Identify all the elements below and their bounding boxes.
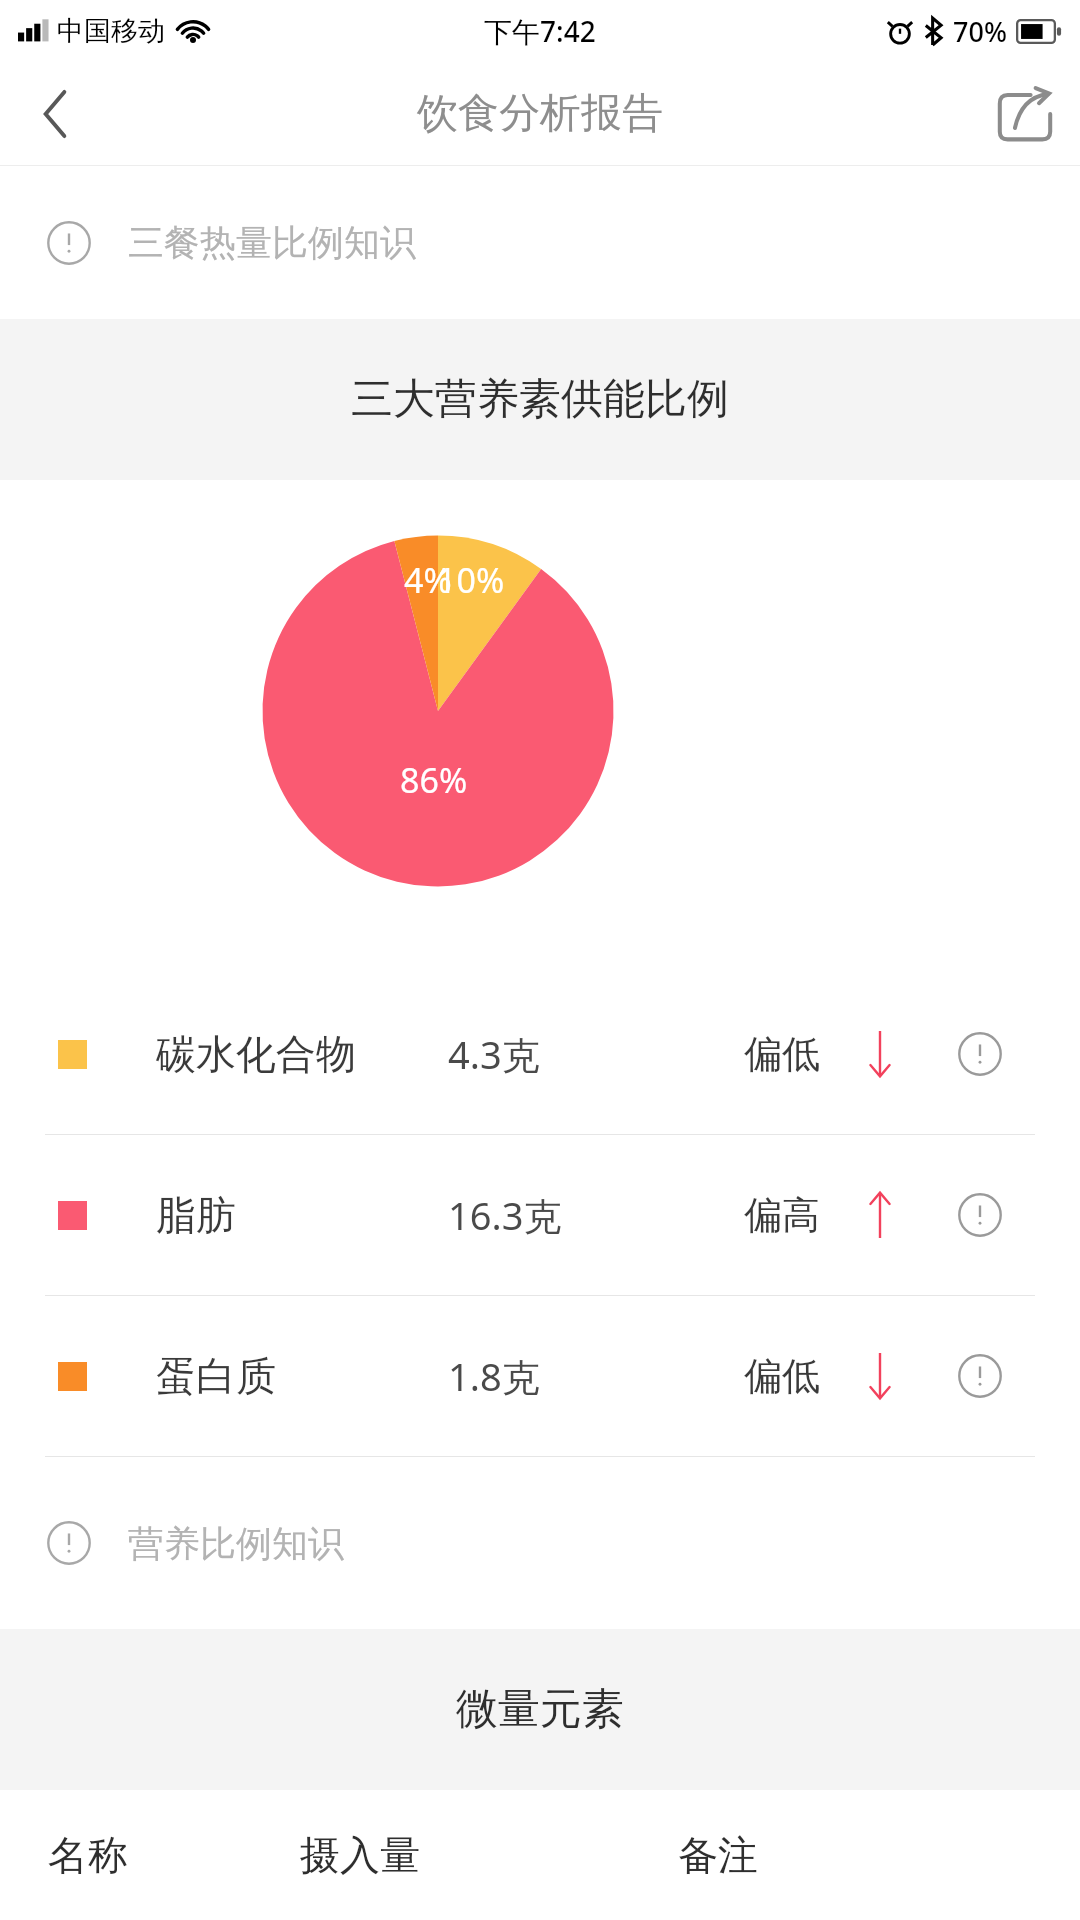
staticText: 4%: [404, 557, 452, 603]
staticText: 碳水化合物: [156, 1029, 356, 1079]
staticText: 备注: [678, 1830, 758, 1880]
other: 偏高: [857, 1192, 903, 1238]
staticText: 16.3克: [448, 1189, 562, 1241]
staticText: 70%: [953, 13, 1007, 50]
staticText: 1.8克: [448, 1350, 540, 1402]
other: 偏低: [857, 1353, 903, 1399]
staticText: 饮食分析报告: [417, 88, 663, 140]
staticText: 摄入量: [300, 1830, 420, 1880]
staticText: 名称: [48, 1830, 128, 1880]
other: 偏低: [857, 1031, 903, 1077]
staticText: 偏低: [744, 1352, 820, 1400]
staticText: 偏高: [744, 1191, 820, 1239]
button[interactable]: 查看详情: [956, 1191, 1004, 1239]
staticText: 微量元素: [456, 1683, 624, 1736]
staticText: 三餐热量比例知识: [128, 220, 416, 265]
staticText: 脂肪: [156, 1190, 236, 1240]
staticText: 10%: [437, 557, 505, 603]
staticText: 86%: [400, 757, 468, 803]
staticText: 偏低: [744, 1030, 820, 1078]
staticText: 4.3克: [448, 1028, 540, 1080]
staticText: 三大营养素供能比例: [351, 373, 729, 426]
staticText: 蛋白质: [156, 1351, 276, 1401]
button[interactable]: 查看详情: [956, 1030, 1004, 1078]
button[interactable]: 三餐热量比例知识: [0, 166, 1080, 319]
button[interactable]: Back: [0, 62, 110, 165]
button[interactable]: 蛋白质: [0, 1296, 1080, 1456]
button[interactable]: 脂肪: [0, 1135, 1080, 1295]
staticText: 中国移动: [57, 14, 165, 48]
button[interactable]: Share: [970, 62, 1080, 165]
button[interactable]: 碳水化合物: [0, 974, 1080, 1134]
button[interactable]: 营养比例知识: [0, 1457, 1080, 1629]
staticText: 营养比例知识: [128, 1521, 344, 1566]
button[interactable]: 查看详情: [956, 1352, 1004, 1400]
staticText: 下午7:42: [484, 12, 596, 50]
